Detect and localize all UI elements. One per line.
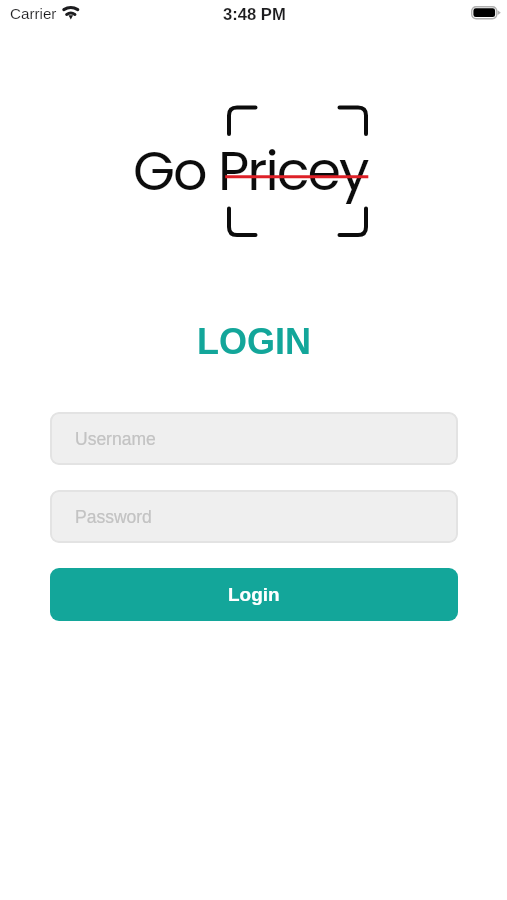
staticText: Password	[75, 507, 152, 527]
staticText: 3:48 PM	[223, 5, 286, 24]
button[interactable]: Login	[50, 568, 458, 621]
button[interactable]: Username	[50, 412, 458, 465]
other: Battery full	[471, 6, 502, 21]
staticText: Go Pricey	[133, 133, 368, 209]
other: Wi-Fi signal	[61, 0, 81, 22]
button[interactable]: Password	[50, 490, 458, 543]
staticText: LOGIN	[197, 321, 311, 361]
other: Go Pricey scanner logo	[0, 0, 507, 900]
staticText: Username	[75, 429, 156, 449]
staticText: Carrier	[10, 5, 57, 22]
staticText: Login	[228, 584, 280, 605]
